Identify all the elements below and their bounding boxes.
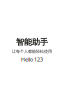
staticText: 智能助手 (16, 37, 48, 47)
staticText: Hello 123 (21, 56, 43, 63)
staticText: 让每个人都能轻松使用 (12, 49, 52, 54)
